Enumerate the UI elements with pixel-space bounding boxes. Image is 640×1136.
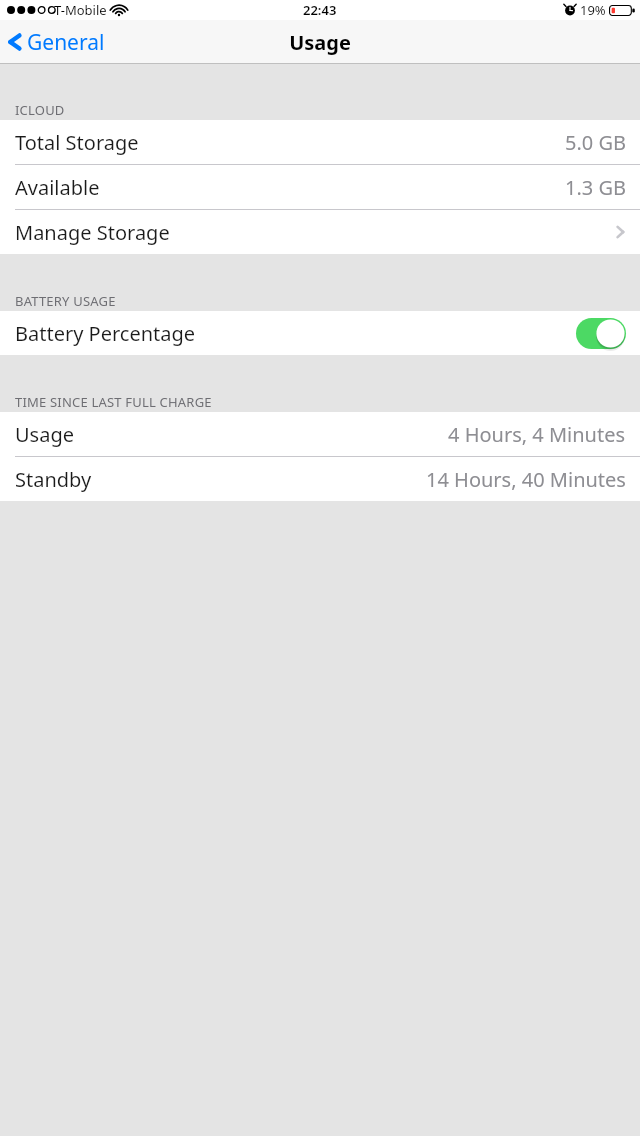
staticText: 22:43 xyxy=(303,1,337,19)
staticText: Manage Storage xyxy=(15,219,170,246)
staticText: 14 Hours, 40 Minutes xyxy=(426,466,626,493)
button[interactable]: General xyxy=(0,20,115,64)
button[interactable]: Total Storage xyxy=(0,120,640,164)
staticText: 1.3 GB xyxy=(565,174,626,201)
staticText: T-Mobile xyxy=(54,1,107,19)
staticText: Available xyxy=(15,174,100,201)
staticText: Usage xyxy=(289,29,351,56)
staticText: Standby xyxy=(15,466,92,493)
button[interactable]: Usage xyxy=(0,412,640,456)
staticText: 5.0 GB xyxy=(565,129,626,156)
staticText: 4 Hours, 4 Minutes xyxy=(448,421,626,448)
staticText: Battery Percentage xyxy=(15,320,196,347)
button[interactable]: Battery Percentage toggle xyxy=(576,318,626,349)
button[interactable]: Battery Percentage xyxy=(0,311,640,355)
staticText: TIME SINCE LAST FULL CHARGE xyxy=(15,393,212,411)
button[interactable]: Manage Storage xyxy=(0,210,640,254)
button[interactable]: Standby xyxy=(0,457,640,501)
staticText: Total Storage xyxy=(15,129,139,156)
staticText: ICLOUD xyxy=(15,101,65,119)
staticText: General xyxy=(27,28,105,57)
staticText: 19% xyxy=(580,1,606,19)
staticText: BATTERY USAGE xyxy=(15,292,116,310)
staticText: Usage xyxy=(15,421,74,448)
button[interactable]: Available xyxy=(0,165,640,209)
